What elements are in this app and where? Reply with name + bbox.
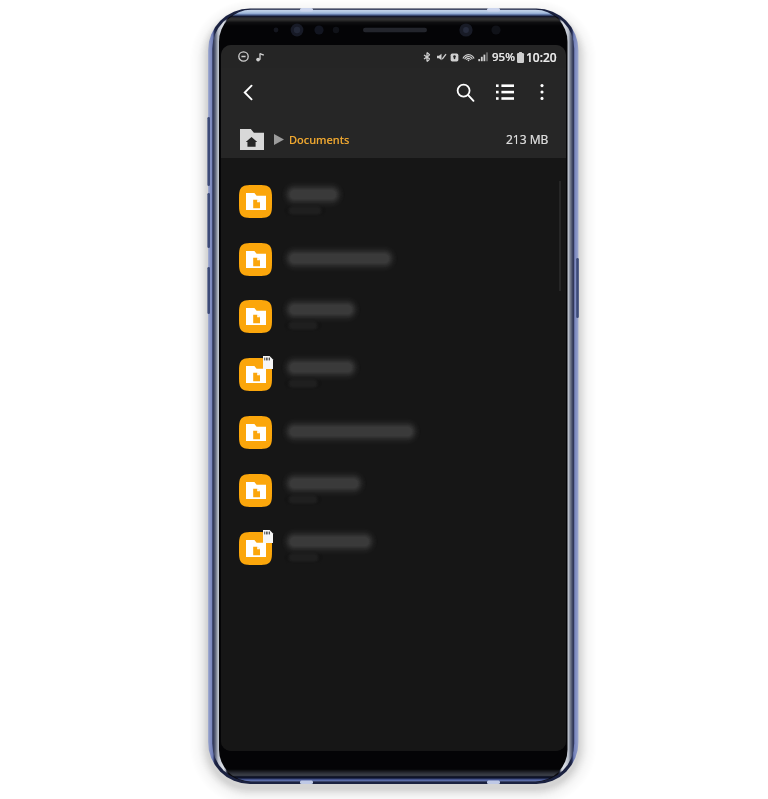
button[interactable]: Navigate back: [228, 72, 268, 112]
button[interactable]: [221, 172, 566, 230]
button[interactable]: Home folder: [240, 129, 264, 150]
button[interactable]: Documents: [289, 132, 350, 147]
staticText: 10:20: [526, 49, 557, 65]
staticText: 95%: [492, 49, 515, 65]
button[interactable]: Change view: [485, 72, 525, 112]
button[interactable]: [221, 287, 566, 345]
button[interactable]: [221, 345, 566, 403]
button[interactable]: [221, 461, 566, 519]
button[interactable]: More options: [525, 75, 559, 109]
staticText: Documents: [289, 132, 350, 147]
button[interactable]: [221, 230, 566, 288]
button[interactable]: [221, 519, 566, 577]
button[interactable]: [221, 403, 566, 461]
staticText: 213 MB: [506, 131, 549, 147]
button[interactable]: Search: [445, 72, 485, 112]
